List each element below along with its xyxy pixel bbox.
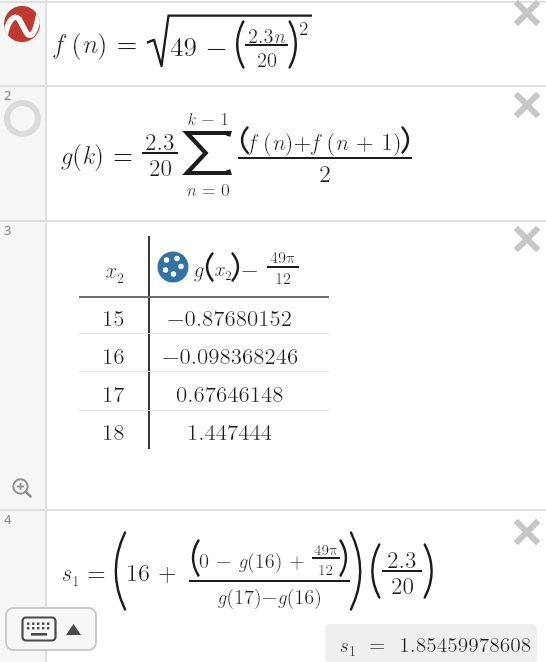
staticText: 1 bbox=[72, 569, 80, 590]
staticText: 2.3 bbox=[145, 124, 175, 157]
button[interactable] bbox=[4, 100, 41, 137]
staticText: n = 0 bbox=[186, 176, 230, 201]
staticText: 20 bbox=[391, 568, 414, 601]
staticText: 49π bbox=[314, 538, 338, 559]
staticText: 0 − g(16) + bbox=[199, 545, 312, 573]
staticText: x bbox=[214, 252, 224, 282]
staticText: s bbox=[61, 554, 71, 588]
staticText: 0.67646148 bbox=[176, 377, 284, 403]
button[interactable] bbox=[5, 607, 97, 651]
staticText: 12 bbox=[318, 558, 334, 579]
staticText: 3 bbox=[4, 221, 12, 239]
staticText: g bbox=[193, 252, 204, 283]
staticText: 2 bbox=[225, 265, 232, 284]
staticText: 20 bbox=[149, 150, 172, 183]
staticText: 2 bbox=[319, 155, 331, 189]
button[interactable] bbox=[513, 91, 541, 119]
staticText: = 1.85459978608 bbox=[355, 628, 532, 658]
staticText: 2 bbox=[299, 14, 309, 41]
staticText: 15 bbox=[102, 301, 125, 327]
staticText: 2.3 bbox=[387, 542, 417, 575]
button[interactable] bbox=[157, 251, 189, 283]
staticText: 4 bbox=[4, 510, 12, 528]
staticText: 2.3n bbox=[248, 20, 285, 48]
button[interactable] bbox=[11, 477, 33, 499]
button[interactable] bbox=[513, 518, 541, 546]
staticText: x bbox=[105, 253, 116, 284]
staticText: − bbox=[241, 252, 266, 283]
staticText: 49 − bbox=[170, 26, 236, 64]
staticText: 16 + bbox=[126, 554, 185, 588]
button[interactable] bbox=[4, 6, 40, 42]
staticText: = bbox=[79, 554, 114, 588]
button[interactable] bbox=[0, 222, 546, 509]
button[interactable] bbox=[513, 225, 541, 253]
staticText: 49π bbox=[270, 245, 296, 268]
button[interactable] bbox=[0, 511, 546, 662]
staticText: 16 bbox=[102, 339, 125, 365]
staticText: −0.098368246 bbox=[162, 339, 299, 365]
staticText: 17 bbox=[102, 377, 125, 403]
staticText: 1.447444 bbox=[187, 415, 273, 441]
button[interactable] bbox=[0, 87, 546, 220]
staticText: k − 1 bbox=[187, 105, 230, 130]
staticText: g(17)−g(16) bbox=[217, 581, 323, 609]
staticText: 2 bbox=[4, 86, 12, 104]
staticText: −0.87680152 bbox=[167, 301, 293, 327]
staticText: f (n) = bbox=[54, 23, 147, 61]
staticText: 1 bbox=[349, 640, 356, 660]
staticText: 2 bbox=[117, 267, 124, 287]
staticText: 18 bbox=[102, 415, 125, 441]
button[interactable] bbox=[0, 3, 546, 85]
staticText: 20 bbox=[257, 44, 277, 72]
button[interactable] bbox=[513, 0, 541, 27]
staticText: s bbox=[339, 628, 348, 658]
staticText: f (n)+f (n + 1) bbox=[248, 124, 402, 157]
staticText: g(k) = bbox=[60, 135, 142, 172]
staticText: 12 bbox=[275, 266, 292, 289]
button[interactable]: s bbox=[325, 624, 537, 662]
